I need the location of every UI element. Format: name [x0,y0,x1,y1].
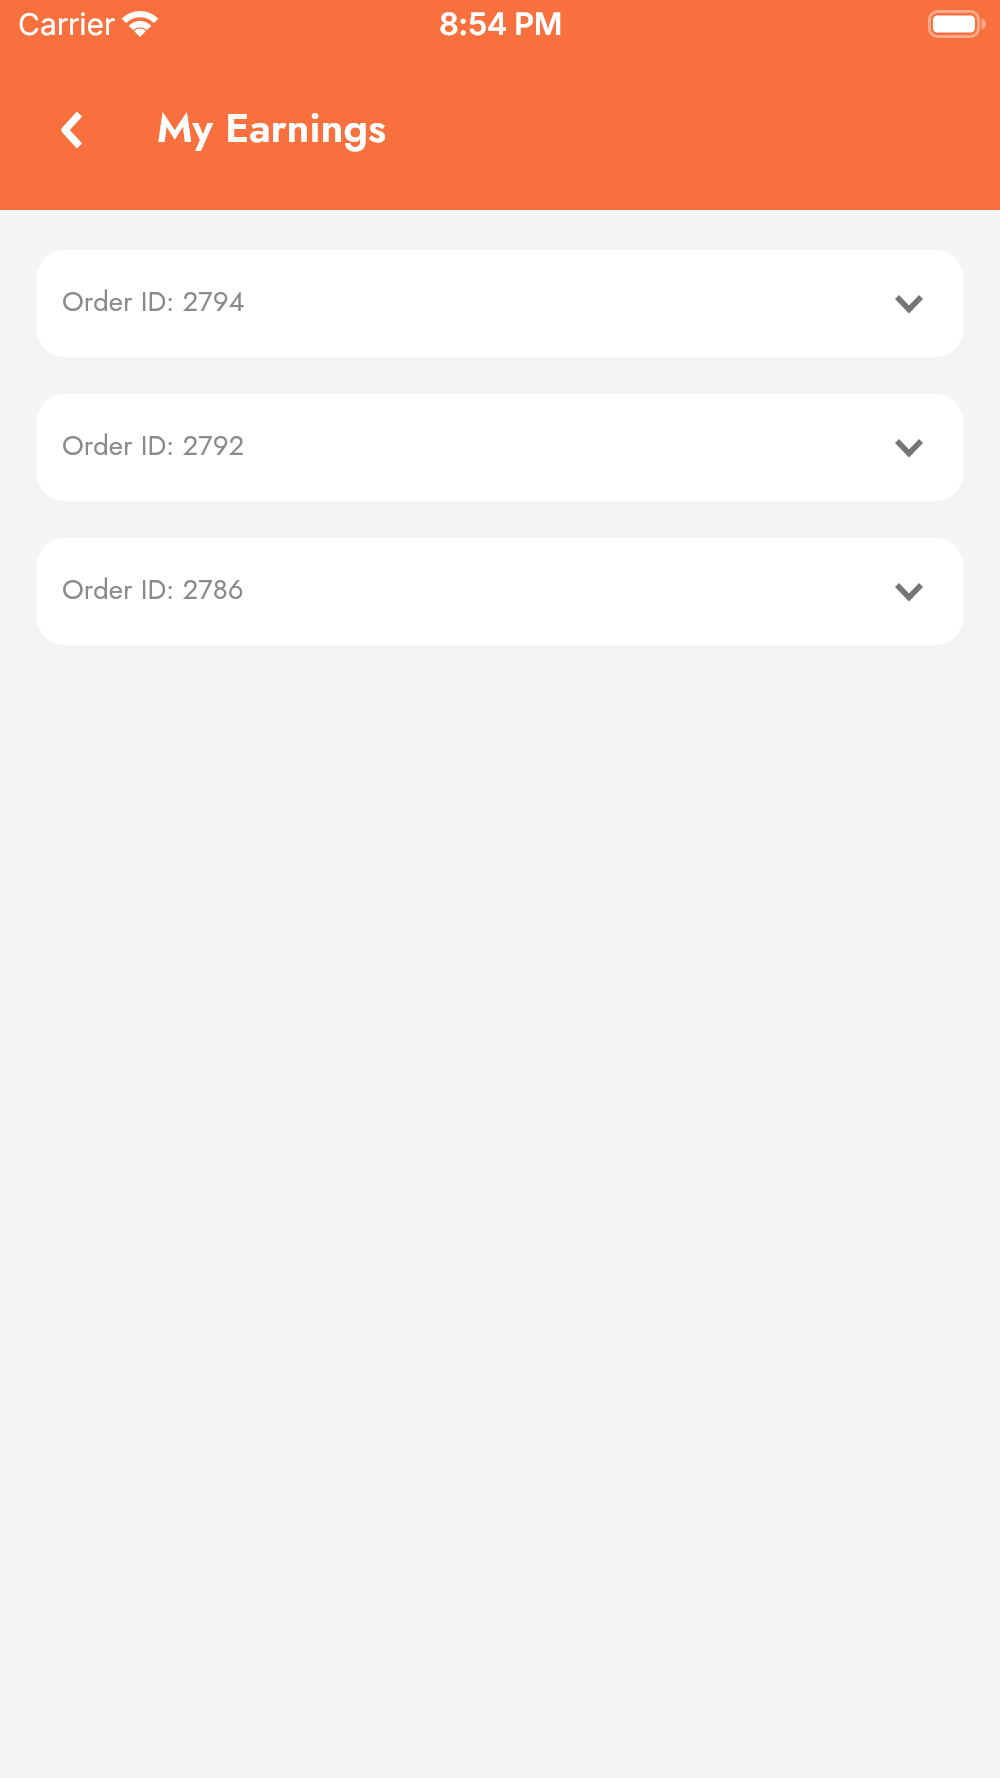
button[interactable]: Order ID: 2794 [37,250,963,357]
staticText: Order ID: 2786 [62,570,244,610]
staticText: Order ID: 2792 [62,426,245,466]
staticText: Carrier [18,6,116,42]
button[interactable]: Order ID: 2786 [37,538,963,645]
staticText: Order ID: 2794 [62,282,245,322]
button[interactable] [48,106,96,154]
button[interactable]: Order ID: 2792 [37,394,963,501]
staticText: My Earnings [157,98,386,157]
staticText: 8:54 PM [439,5,562,43]
